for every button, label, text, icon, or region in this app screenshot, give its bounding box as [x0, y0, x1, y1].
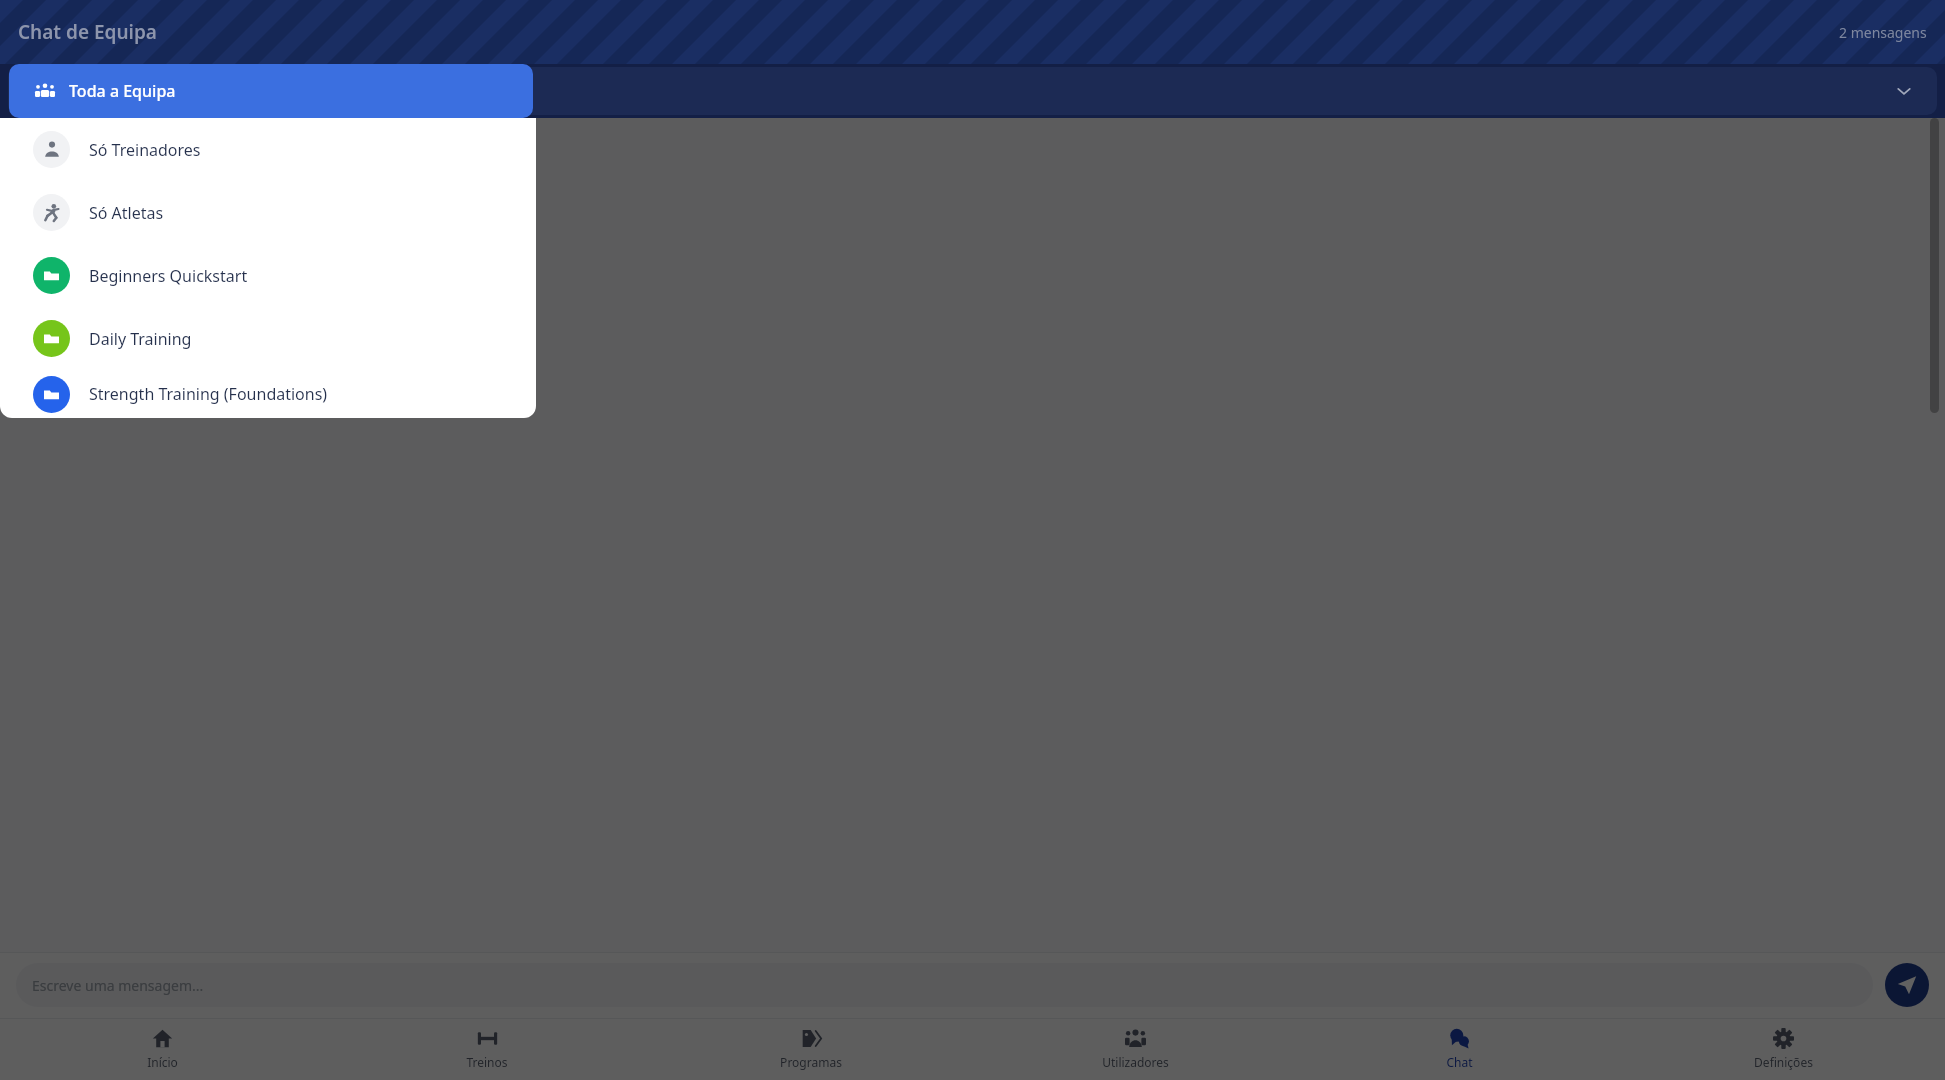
button[interactable]: Chat — [1297, 1018, 1621, 1080]
button[interactable]: Treinos — [325, 1018, 649, 1080]
staticText: Programas — [780, 1054, 842, 1070]
staticText: Chat de Equipa — [18, 19, 157, 45]
staticText: Treinos — [466, 1054, 508, 1070]
staticText: Só Treinadores — [89, 139, 201, 161]
staticText: Só Atletas — [89, 202, 164, 224]
button[interactable]: Utilizadores — [973, 1018, 1297, 1080]
button[interactable]: Só Atletas — [0, 181, 536, 244]
staticText: 2 mensagens — [1839, 23, 1927, 42]
staticText: Toda a Equipa — [69, 80, 176, 102]
button[interactable]: Definições — [1621, 1018, 1945, 1080]
button[interactable]: Enviar mensagem — [1885, 963, 1929, 1007]
button[interactable]: Início — [0, 1018, 325, 1080]
button[interactable]: Daily Training — [0, 307, 536, 370]
staticText: Chat — [1446, 1054, 1473, 1070]
staticText: Strength Training (Foundations) — [89, 383, 328, 405]
staticText: Definições — [1754, 1054, 1813, 1070]
other: Abrir seletor de chat — [1895, 82, 1913, 100]
button[interactable]: Abrir seletor de chat — [8, 67, 1937, 115]
staticText: Início — [147, 1054, 178, 1070]
button[interactable]: Strength Training (Foundations) — [0, 370, 536, 418]
button[interactable]: Só Treinadores — [0, 118, 536, 181]
button[interactable]: Beginners Quickstart — [0, 244, 536, 307]
staticText: Utilizadores — [1102, 1054, 1169, 1070]
staticText: Daily Training — [89, 328, 192, 350]
button[interactable] — [0, 0, 1945, 1080]
button[interactable]: Programas — [649, 1018, 973, 1080]
button[interactable]: Toda a Equipa — [9, 64, 533, 118]
staticText: Beginners Quickstart — [89, 265, 248, 287]
staticText: Escreve uma mensagem... — [32, 976, 204, 995]
